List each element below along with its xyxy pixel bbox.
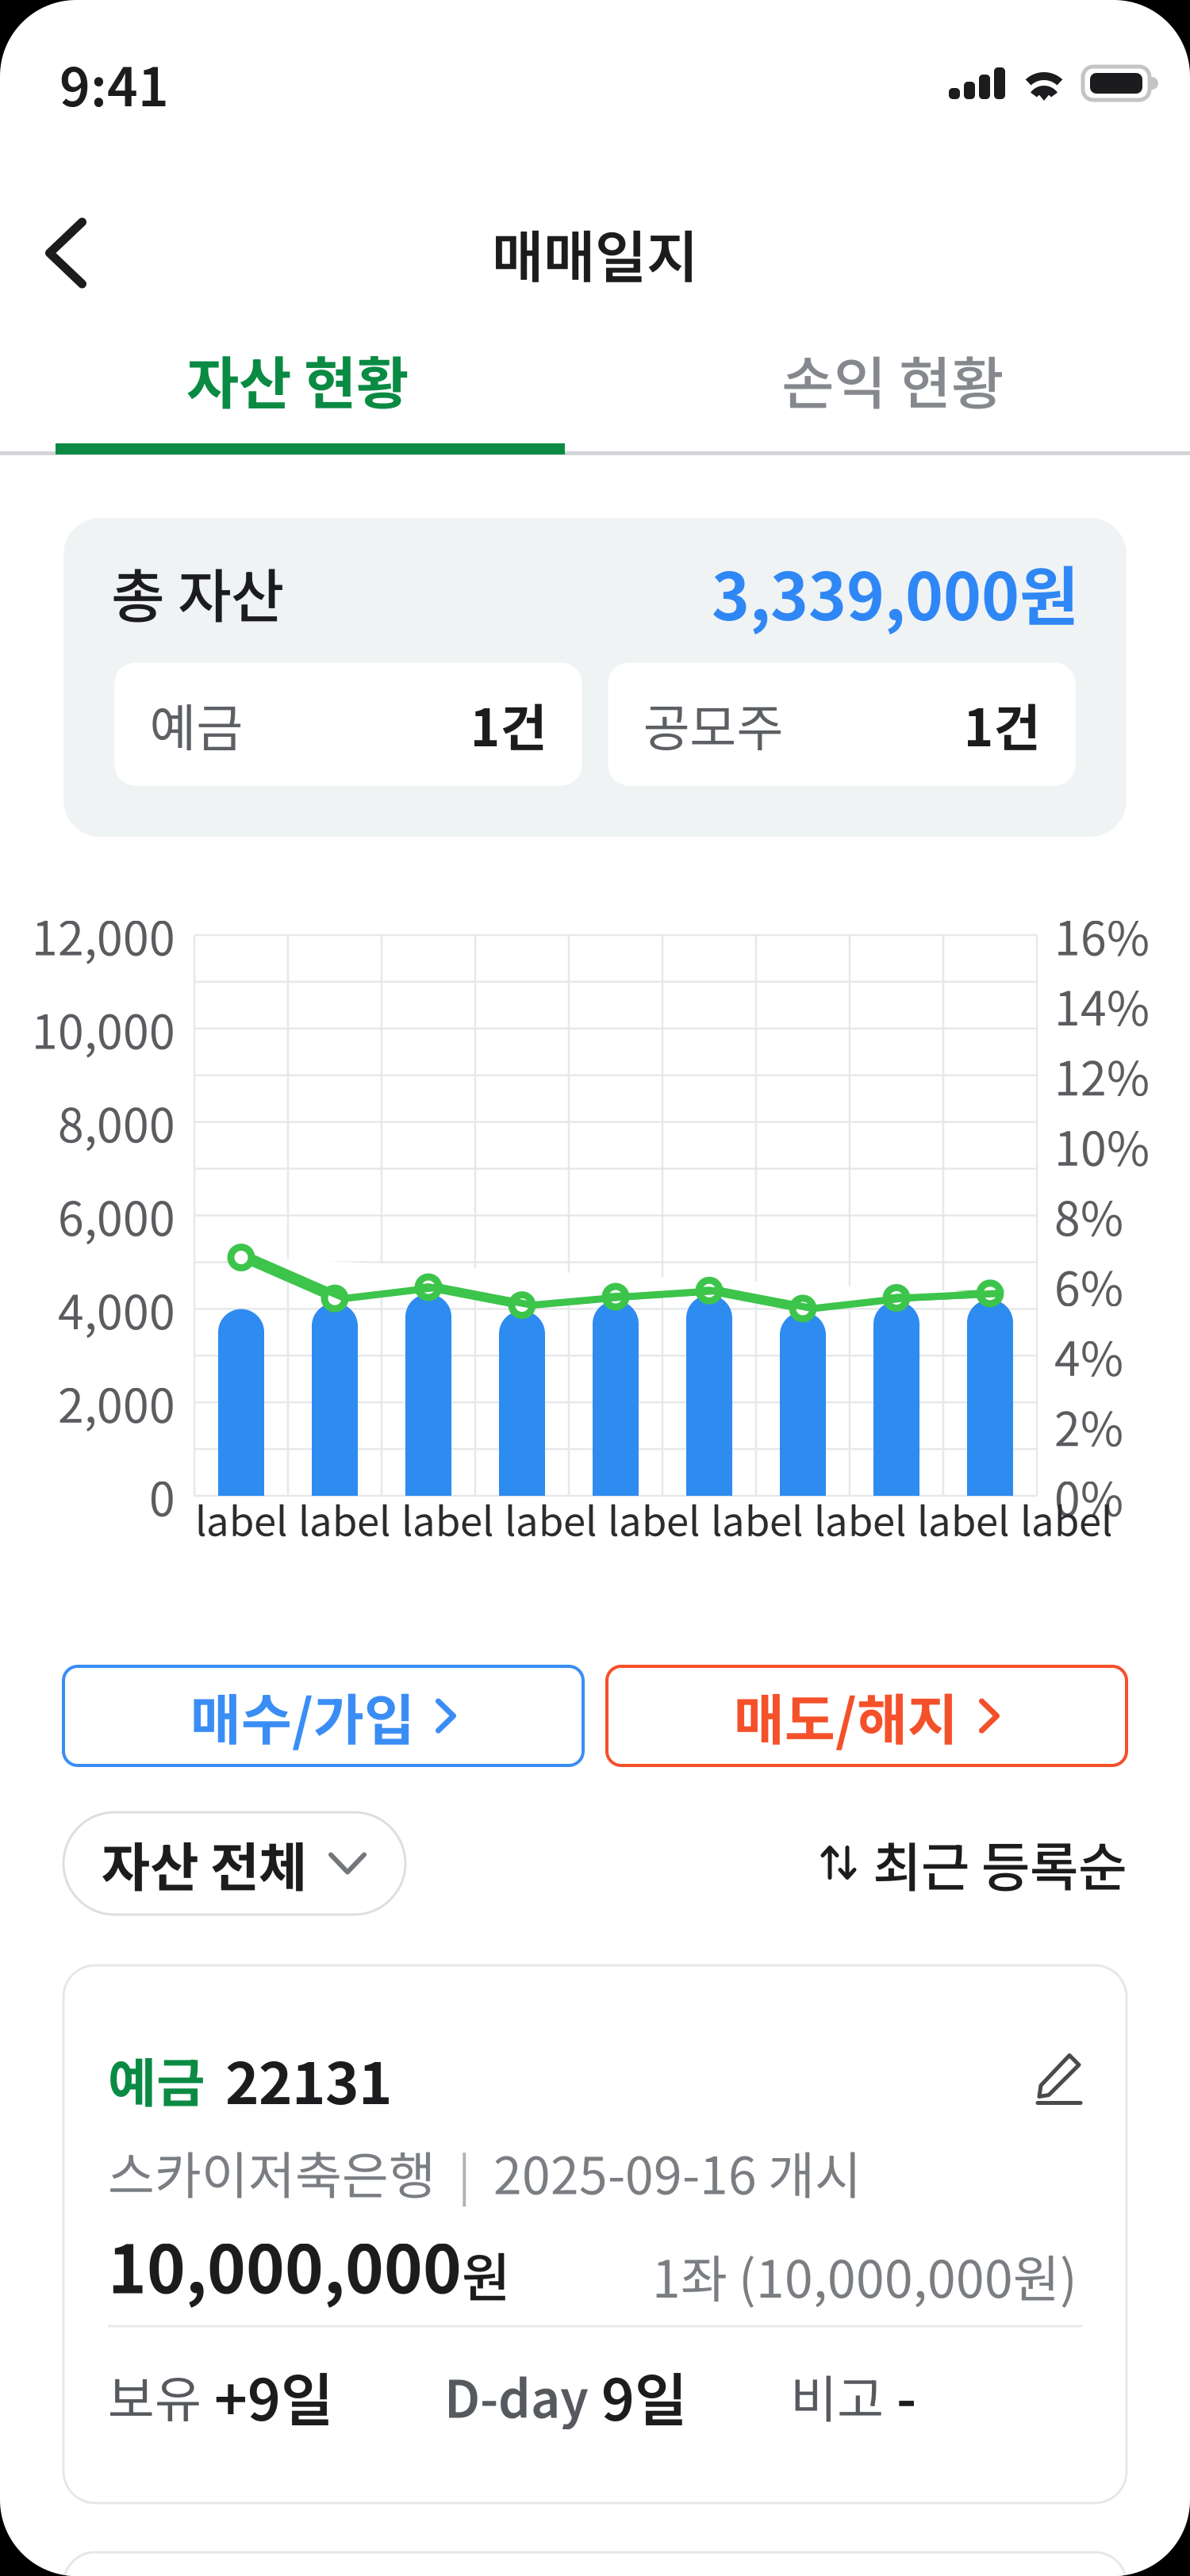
staticText: 6% <box>1054 1252 1123 1319</box>
button[interactable]: Back <box>0 202 132 304</box>
staticText: +9일 <box>214 2354 333 2437</box>
staticText: 9일 <box>601 2354 687 2437</box>
staticText: 16% <box>1054 901 1150 969</box>
staticText: 12% <box>1054 1042 1150 1109</box>
staticText: label <box>298 1489 390 1548</box>
staticText: label <box>505 1489 597 1548</box>
staticText: 보유 <box>108 2359 202 2432</box>
staticText: 1건 <box>470 687 547 761</box>
staticText: 14% <box>1054 971 1150 1039</box>
staticText: label <box>195 1489 287 1548</box>
staticText: 2,000 <box>58 1369 175 1436</box>
staticText: 8% <box>1054 1182 1123 1249</box>
button[interactable]: 자산 현황 <box>0 338 595 443</box>
staticText: 총 자산 <box>111 550 284 634</box>
staticText: 예금 <box>150 687 243 761</box>
staticText: label <box>608 1489 700 1548</box>
staticText: 손익 현황 <box>781 338 1004 421</box>
staticText: 원 <box>462 2236 510 2312</box>
staticText: 매수/가입 <box>190 1676 415 1756</box>
staticText: 2025-09-16 개시 <box>493 2135 862 2209</box>
staticText: label <box>917 1489 1009 1548</box>
button[interactable]: 손익 현황 <box>595 338 1190 443</box>
staticText: 4,000 <box>58 1275 175 1343</box>
staticText: label <box>711 1489 803 1548</box>
staticText: 10,000 <box>32 995 175 1062</box>
staticText: 1좌 (10,000,000원) <box>652 2239 1077 2312</box>
staticText: 1건 <box>964 687 1040 761</box>
button[interactable]: 자산 전체 <box>63 1812 405 1915</box>
staticText: 3,339,000원 <box>712 545 1079 639</box>
staticText: 10,000,000 <box>108 2217 462 2312</box>
staticText: 예금 <box>108 2041 205 2117</box>
staticText: label <box>814 1489 906 1548</box>
staticText: 매도/해지 <box>734 1676 958 1756</box>
staticText: 스카이저축은행 <box>108 2135 436 2209</box>
staticText: 0% <box>1054 1462 1123 1529</box>
staticText: 매매일지 <box>492 212 698 294</box>
staticText: 2% <box>1054 1392 1123 1459</box>
button[interactable]: Edit <box>1038 2052 1082 2106</box>
staticText: 자산 전체 <box>102 1825 307 1902</box>
staticText: 0 <box>149 1462 175 1529</box>
staticText: label <box>1020 1489 1112 1548</box>
staticText: label <box>401 1489 493 1548</box>
staticText: 자산 현황 <box>186 338 409 421</box>
staticText: 22131 <box>225 2038 392 2121</box>
staticText: 9:41 <box>59 45 169 122</box>
staticText: 공모주 <box>643 687 783 761</box>
button[interactable]: 최근 등록순 <box>820 1812 1127 1915</box>
staticText: D-day <box>444 2359 589 2432</box>
staticText: 10% <box>1054 1112 1150 1179</box>
button[interactable]: 매도/해지 <box>607 1666 1127 1765</box>
staticText: - <box>896 2356 916 2435</box>
button[interactable]: 매수/가입 <box>63 1666 583 1765</box>
staticText: 8,000 <box>58 1088 175 1156</box>
staticText: 6,000 <box>58 1182 175 1249</box>
staticText: 비고 <box>790 2359 884 2432</box>
staticText: | <box>458 2137 471 2207</box>
staticText: 최근 등록순 <box>873 1825 1127 1902</box>
staticText: 12,000 <box>32 901 175 969</box>
staticText: 4% <box>1054 1322 1123 1389</box>
